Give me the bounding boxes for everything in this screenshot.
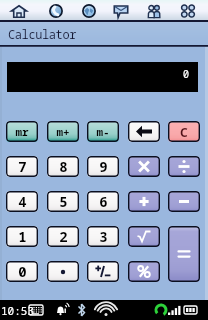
staticText: 9 — [99, 157, 108, 176]
button[interactable]: 5 — [47, 191, 79, 212]
button[interactable]: 7 — [6, 156, 38, 177]
button[interactable]: Phone — [39, 0, 73, 22]
button[interactable]: 3 — [87, 226, 119, 247]
button[interactable]: m- — [87, 121, 119, 142]
button[interactable]: 8 — [47, 156, 79, 177]
button[interactable]: Backspace — [128, 121, 160, 142]
button[interactable]: C — [168, 121, 200, 142]
button[interactable]: Decimal point — [47, 261, 79, 282]
button[interactable]: 0 — [6, 261, 38, 282]
staticText: Calculator — [8, 26, 77, 42]
staticText: 3 — [99, 227, 108, 246]
button[interactable]: 4 — [6, 191, 38, 212]
button[interactable]: Contacts — [137, 0, 171, 22]
staticText: 7 — [18, 157, 27, 176]
staticText: 6 — [99, 192, 108, 211]
button[interactable]: Sign — [87, 261, 119, 282]
staticText: 8 — [59, 157, 68, 176]
button[interactable]: Percent — [128, 261, 160, 282]
button[interactable]: Equals — [168, 226, 200, 282]
button[interactable]: mr — [6, 121, 38, 142]
button[interactable]: 1 — [6, 226, 38, 247]
button[interactable]: 2 — [47, 226, 79, 247]
staticText: m- — [96, 124, 110, 139]
button[interactable]: 6 — [87, 191, 119, 212]
button[interactable]: Applications — [171, 0, 205, 22]
staticText: mr — [15, 124, 29, 139]
button[interactable]: Minus — [168, 191, 200, 212]
button[interactable]: Messages — [104, 0, 138, 22]
staticText: 2 — [59, 227, 68, 246]
staticText: 1 — [18, 227, 27, 246]
button[interactable]: 9 — [87, 156, 119, 177]
staticText: C — [180, 123, 188, 141]
button[interactable]: Square root — [128, 226, 160, 247]
button[interactable]: Plus — [128, 191, 160, 212]
button[interactable]: Divide — [168, 156, 200, 177]
staticText: m+ — [56, 124, 70, 139]
staticText: 10:53 — [1, 303, 34, 318]
staticText: 0 — [183, 67, 189, 81]
button[interactable]: m+ — [47, 121, 79, 142]
staticText: 0 — [18, 262, 27, 281]
button[interactable]: Browser — [72, 0, 106, 22]
staticText: 4 — [18, 192, 27, 211]
button[interactable]: Multiply — [128, 156, 160, 177]
button[interactable]: Home — [2, 0, 36, 22]
staticText: 5 — [59, 192, 68, 211]
